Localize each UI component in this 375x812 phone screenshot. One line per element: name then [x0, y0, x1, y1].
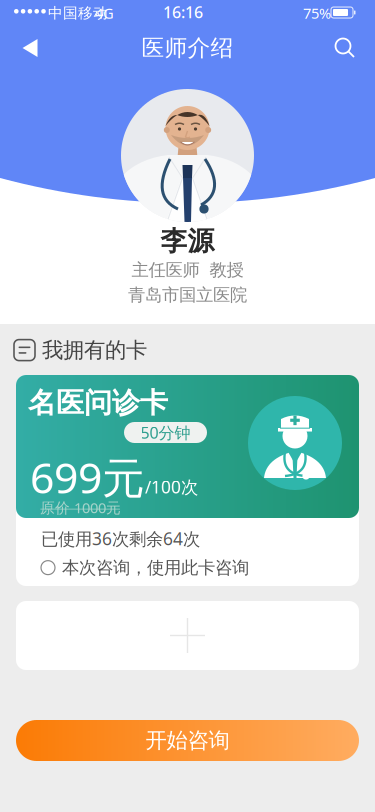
button[interactable]: 搜索 [323, 26, 367, 70]
staticText: 青岛市国立医院 [128, 284, 247, 306]
staticText: 本次咨询，使用此卡咨询 [62, 557, 249, 578]
staticText: 我拥有的卡 [42, 337, 147, 363]
staticText: 开始咨询 [145, 727, 229, 754]
staticText: 699元 [30, 449, 145, 505]
staticText: 75% [303, 3, 331, 23]
staticText: 名医问诊卡 [28, 386, 168, 420]
button[interactable]: 本次咨询，使用此卡咨询 [41, 557, 249, 578]
staticText: 医师介绍 [141, 34, 233, 62]
staticText: 李源 [160, 225, 214, 257]
button[interactable]: 开始咨询 [16, 720, 359, 761]
staticText: /100次 [145, 475, 198, 498]
staticText: 16:16 [163, 1, 203, 23]
staticText: 原价 1000元 [40, 498, 121, 517]
staticText: 主任医师 教授 [131, 259, 243, 281]
staticText: 已使用36次剩余64次 [41, 527, 200, 550]
staticText: 50分钟 [140, 422, 190, 443]
staticText: 中国移动 [48, 4, 108, 22]
staticText: 4G [95, 3, 114, 23]
button[interactable]: 返回 [8, 26, 52, 70]
